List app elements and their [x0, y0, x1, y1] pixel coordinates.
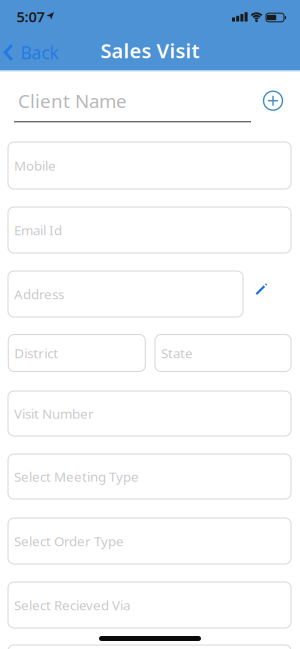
button[interactable]: Address [8, 271, 243, 317]
staticText: 5:07 [16, 7, 44, 26]
staticText: Select Meeting Type [14, 468, 139, 485]
button[interactable] [255, 282, 268, 295]
button[interactable]: Mobile [8, 142, 291, 189]
button[interactable]: Select Recieved Via [8, 582, 291, 628]
button[interactable]: District [8, 334, 145, 371]
staticText: Back [20, 41, 58, 64]
staticText: District [14, 344, 58, 362]
button[interactable]: Client Name [18, 88, 127, 113]
staticText: Address [14, 285, 64, 303]
staticText: Select Recieved Via [14, 596, 130, 614]
staticText: Mobile [14, 157, 56, 174]
button[interactable]: Select Order Type [8, 518, 291, 564]
staticText: Visit Number [14, 405, 94, 422]
button[interactable]: Back [3, 41, 58, 64]
button[interactable] [8, 645, 291, 649]
button[interactable] [263, 91, 282, 110]
staticText: Select Order Type [14, 532, 124, 550]
button[interactable]: Visit Number [8, 391, 291, 436]
button[interactable]: State [155, 334, 291, 371]
staticText: Email Id [14, 221, 62, 239]
staticText: Sales Visit [100, 37, 199, 64]
staticText: State [161, 344, 193, 362]
button[interactable]: Select Meeting Type [8, 454, 291, 499]
staticText: Client Name [18, 88, 127, 113]
button[interactable]: Email Id [8, 207, 291, 253]
